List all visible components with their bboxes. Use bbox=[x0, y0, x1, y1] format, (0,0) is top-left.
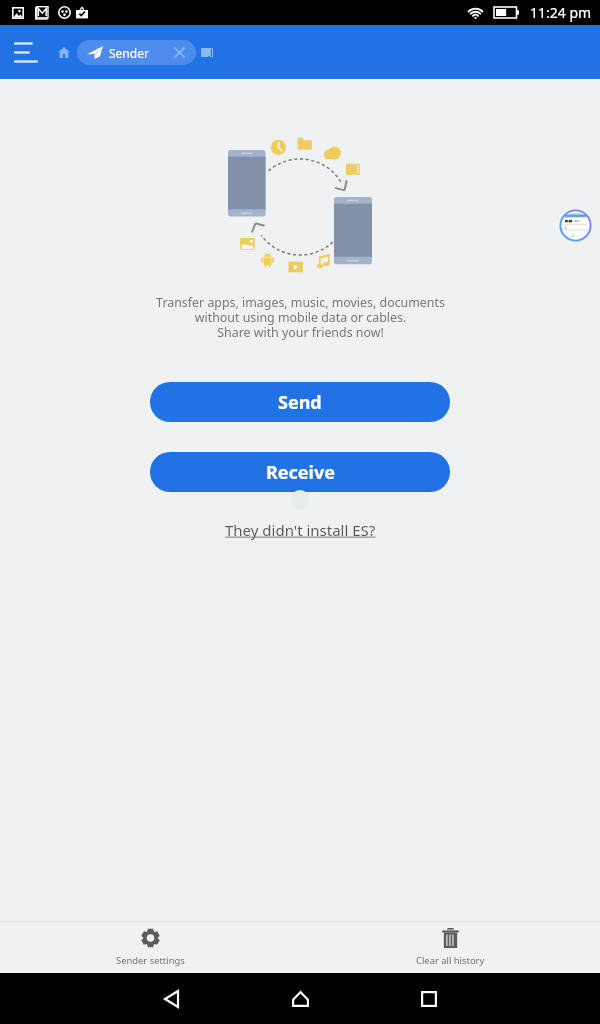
staticText: Clear all history bbox=[416, 954, 485, 967]
button[interactable]: Send bbox=[150, 382, 450, 422]
staticText: Send bbox=[278, 390, 322, 415]
button[interactable]: Menu bbox=[0, 25, 52, 79]
staticText: They didn't install ES? bbox=[225, 520, 376, 540]
button[interactable]: Sender bbox=[77, 40, 196, 65]
button[interactable]: Home bbox=[52, 25, 75, 79]
staticText: 11:24 pm bbox=[530, 3, 592, 22]
button[interactable]: Bookmarks bbox=[196, 25, 218, 79]
staticText: Sender bbox=[109, 45, 149, 61]
button[interactable]: Home bbox=[264, 973, 336, 1024]
button[interactable]: Back bbox=[135, 973, 207, 1024]
button[interactable]: Receive bbox=[150, 452, 450, 492]
staticText: Receive bbox=[266, 460, 335, 485]
staticText: Transfer apps, images, music, movies, do… bbox=[156, 294, 445, 340]
button[interactable]: Sender settings bbox=[0, 922, 300, 973]
button[interactable]: Floating window bbox=[559, 209, 592, 242]
button[interactable]: They didn't install ES? bbox=[221, 516, 380, 544]
button[interactable]: Clear all history bbox=[300, 922, 600, 973]
button[interactable]: Recents bbox=[393, 973, 465, 1024]
staticText: Sender settings bbox=[116, 954, 185, 967]
